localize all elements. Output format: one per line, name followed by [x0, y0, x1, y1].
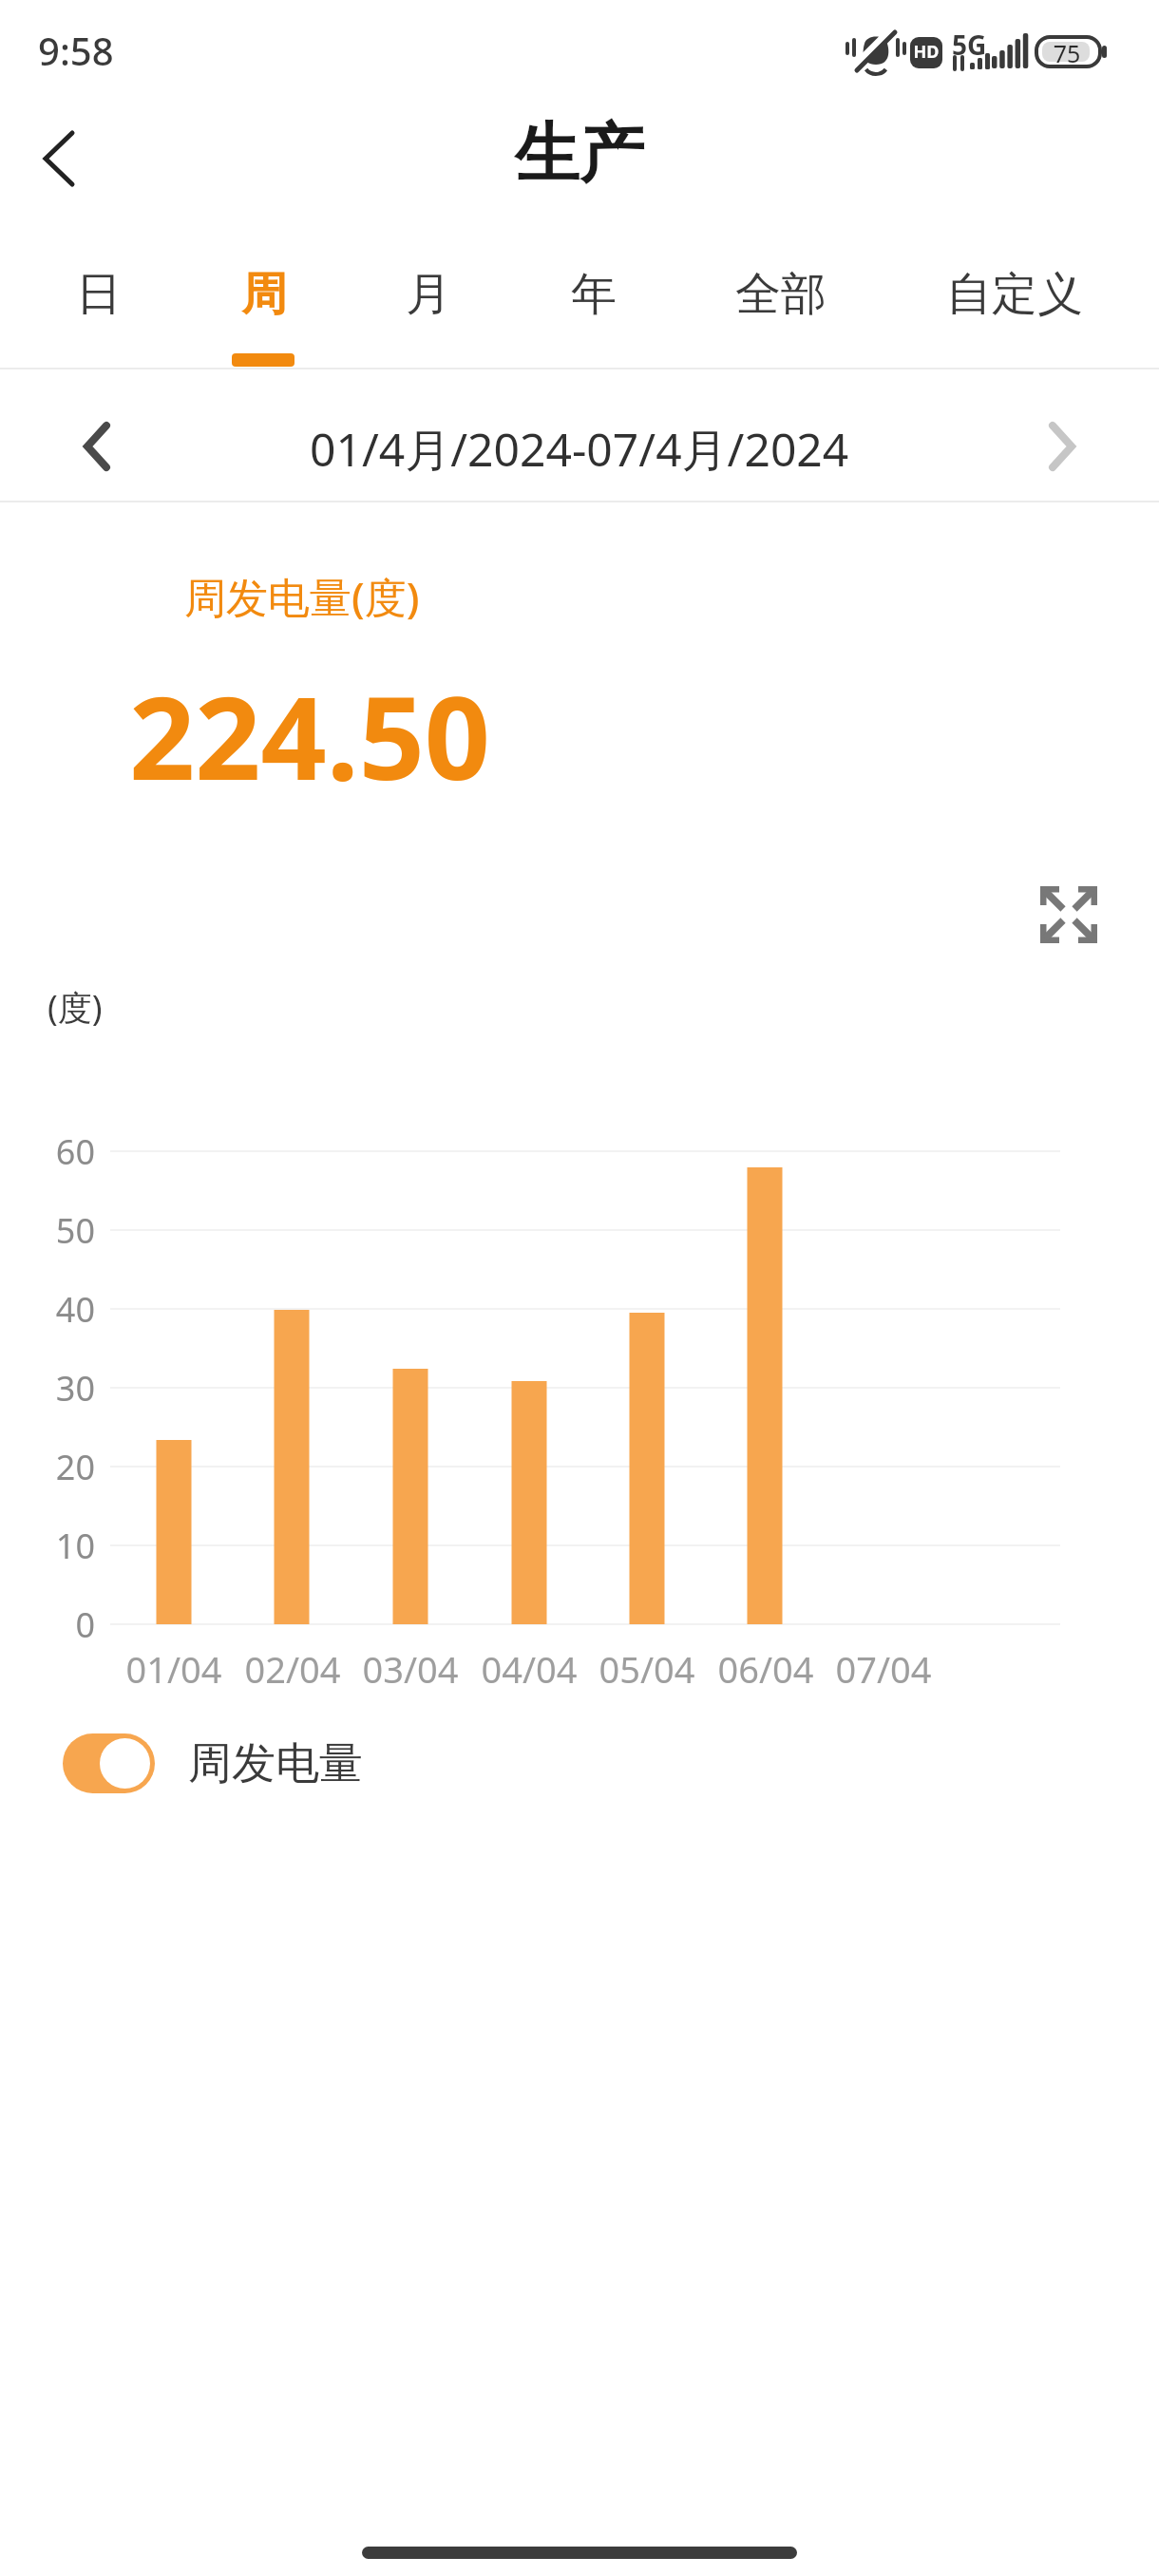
staticText: (度)	[47, 984, 103, 1031]
button[interactable]	[63, 1733, 155, 1793]
staticText: 30	[27, 1365, 95, 1411]
staticText: 05/04	[580, 1644, 713, 1694]
staticText: 07/04	[817, 1644, 950, 1694]
staticText: 5G	[952, 27, 987, 63]
staticText: 10	[27, 1523, 95, 1569]
button[interactable]: 月	[406, 266, 451, 323]
staticText: HD	[910, 40, 942, 64]
staticText: 9:58	[38, 25, 114, 76]
staticText: 0	[27, 1601, 95, 1648]
staticText: 01/04	[107, 1644, 240, 1694]
staticText: 40	[27, 1286, 95, 1333]
button[interactable]	[1026, 872, 1111, 957]
staticText: 60	[27, 1128, 95, 1175]
staticText: 50	[27, 1207, 95, 1254]
button[interactable]: 全部	[735, 266, 826, 323]
staticText: 75	[1040, 37, 1093, 69]
staticText: 周发电量	[188, 1736, 363, 1791]
staticText: 03/04	[344, 1644, 477, 1694]
staticText: 04/04	[463, 1644, 596, 1694]
staticText: 02/04	[226, 1644, 359, 1694]
staticText: 224.50	[129, 657, 491, 814]
button[interactable]	[1030, 410, 1092, 483]
button[interactable]: 日	[76, 266, 122, 323]
staticText: 06/04	[699, 1644, 832, 1694]
staticText: 周发电量(度)	[184, 568, 420, 625]
staticText: 生产	[515, 114, 644, 196]
button[interactable]: 01/4月/2024-07/4月/2024	[310, 418, 849, 481]
button[interactable]: 自定义	[946, 266, 1083, 323]
button[interactable]: 周	[241, 266, 287, 323]
button[interactable]	[66, 410, 129, 483]
button[interactable]	[28, 123, 101, 196]
staticText: 20	[27, 1444, 95, 1490]
button[interactable]: 年	[571, 266, 617, 323]
